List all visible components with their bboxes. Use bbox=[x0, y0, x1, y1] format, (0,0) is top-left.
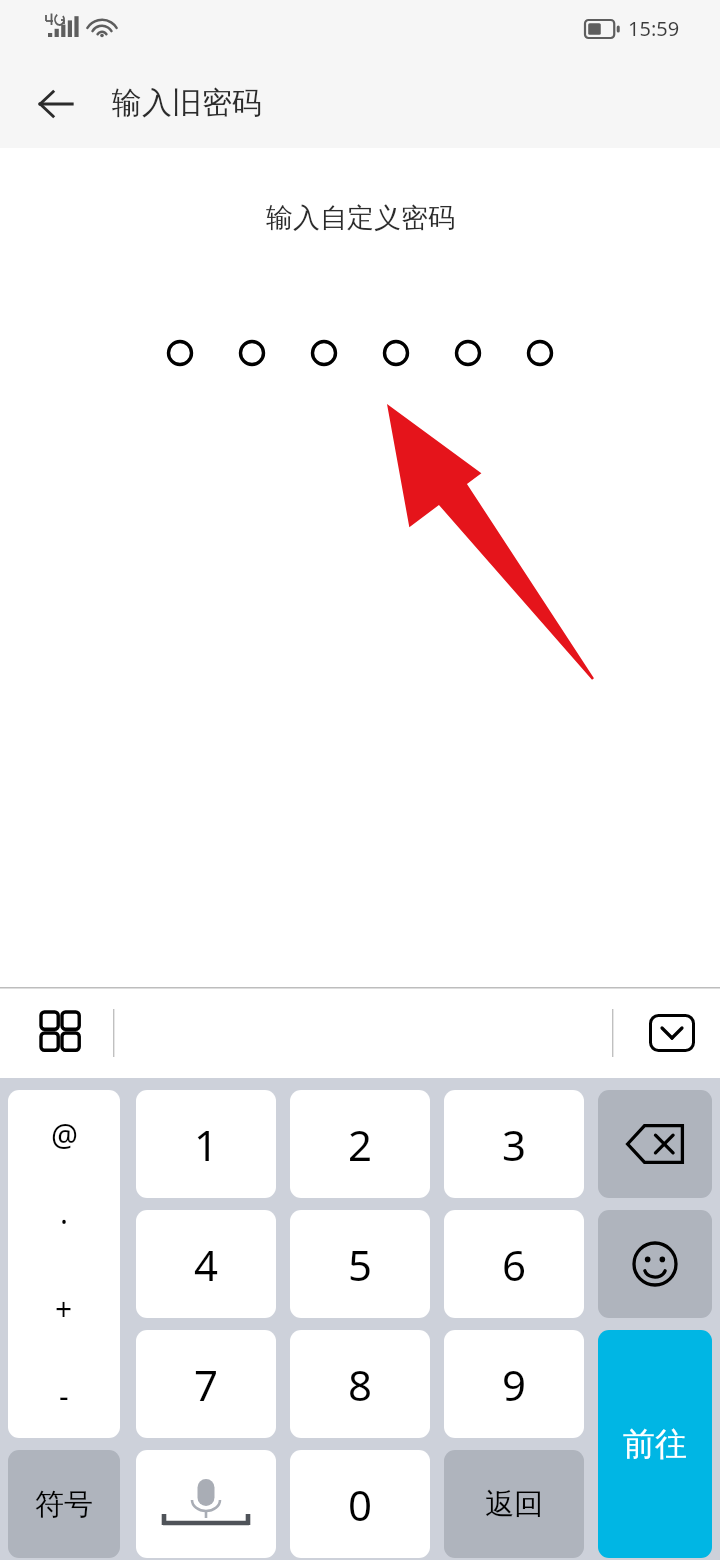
button[interactable]: 5 bbox=[290, 1210, 430, 1318]
button[interactable]: @ bbox=[8, 1090, 120, 1438]
staticText: + bbox=[55, 1288, 73, 1329]
button[interactable]: 符号 bbox=[8, 1450, 120, 1558]
button[interactable]: 3 bbox=[444, 1090, 584, 1198]
staticText: 9 bbox=[502, 1356, 527, 1413]
staticText: 3 bbox=[502, 1116, 527, 1173]
staticText: 15:59 bbox=[628, 15, 680, 42]
staticText: 6 bbox=[502, 1236, 527, 1293]
button[interactable]: 6 bbox=[444, 1210, 584, 1318]
staticText: 输入自定义密码 bbox=[266, 201, 455, 235]
button[interactable]: Back bbox=[24, 72, 88, 136]
button[interactable]: Voice input and space bbox=[136, 1450, 276, 1558]
button[interactable]: 9 bbox=[444, 1330, 584, 1438]
staticText: 4 bbox=[194, 1236, 219, 1293]
button[interactable]: Backspace bbox=[598, 1090, 712, 1198]
button[interactable]: Hide keyboard bbox=[640, 1001, 704, 1065]
staticText: - bbox=[59, 1375, 69, 1416]
staticText: 符号 bbox=[35, 1486, 93, 1523]
button[interactable]: 1 bbox=[136, 1090, 276, 1198]
staticText: 1 bbox=[194, 1116, 219, 1173]
button[interactable]: 0 bbox=[290, 1450, 430, 1558]
staticText: 8 bbox=[348, 1356, 373, 1413]
staticText: · bbox=[60, 1201, 69, 1242]
button[interactable]: 2 bbox=[290, 1090, 430, 1198]
staticText: 5 bbox=[348, 1236, 373, 1293]
button[interactable]: 前往 bbox=[598, 1330, 712, 1558]
button[interactable]: Keyboard layouts bbox=[22, 993, 102, 1073]
button[interactable]: 4 bbox=[136, 1210, 276, 1318]
staticText: 前往 bbox=[623, 1424, 687, 1464]
staticText: 返回 bbox=[485, 1486, 543, 1523]
button[interactable]: 7 bbox=[136, 1330, 276, 1438]
button[interactable]: 返回 bbox=[444, 1450, 584, 1558]
staticText: 0 bbox=[348, 1476, 373, 1533]
button[interactable]: 8 bbox=[290, 1330, 430, 1438]
staticText: @ bbox=[51, 1114, 78, 1155]
staticText: 7 bbox=[194, 1356, 219, 1413]
button[interactable]: Emoji bbox=[598, 1210, 712, 1318]
staticText: 输入旧密码 bbox=[112, 84, 262, 122]
staticText: 2 bbox=[348, 1116, 373, 1173]
